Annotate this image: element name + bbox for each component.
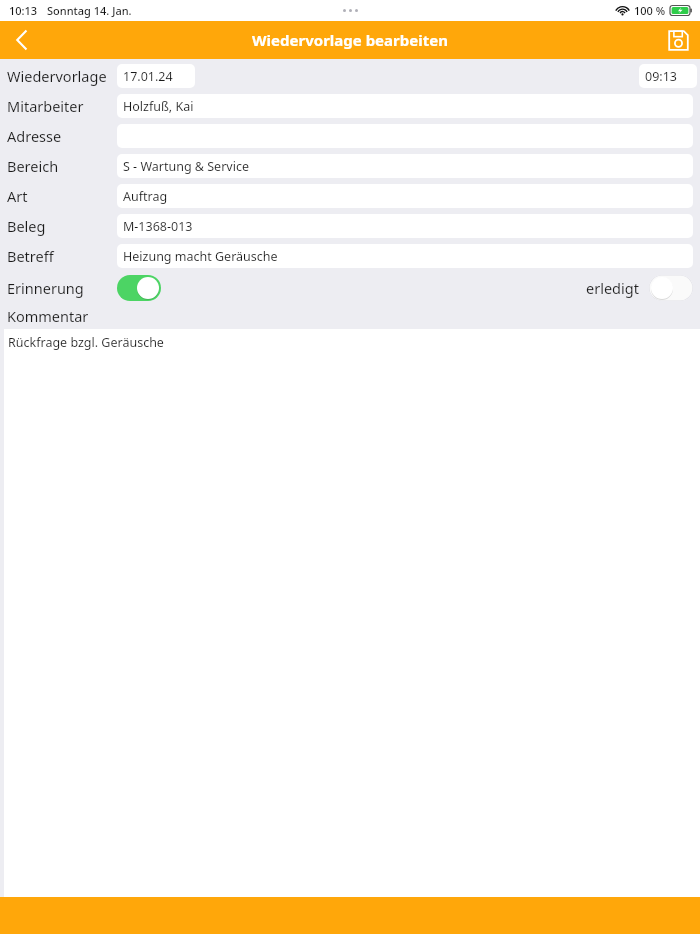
button[interactable]: 17.01.24 [117,64,195,88]
button[interactable]: Erinnerung aktiviert [117,275,161,301]
staticText: Betreff [7,246,117,266]
staticText: Beleg [7,216,117,236]
staticText: 100 % [634,3,666,18]
button[interactable]: Zurück [0,21,44,59]
button[interactable]: Rückfrage bzgl. Geräusche [4,329,700,897]
staticText: Mitarbeiter [7,96,117,116]
staticText: Wiedervorlage bearbeiten [252,30,448,50]
button[interactable]: 09:13 [639,64,697,88]
staticText: Art [7,186,117,206]
staticText: 09:13 [645,68,677,85]
staticText: S - Wartung & Service [123,158,249,175]
staticText: Adresse [7,126,117,146]
staticText: Sonntag 14. Jan. [47,3,132,18]
staticText: Erinnerung [7,278,117,298]
button[interactable]: M-1368-013 [117,214,693,238]
button[interactable]: Speichern [656,21,700,59]
staticText: M-1368-013 [123,218,193,235]
staticText: Wiedervorlage [7,66,117,86]
staticText: Kommentar [7,306,89,326]
staticText: 17.01.24 [123,68,173,85]
staticText: Rückfrage bzgl. Geräusche [8,334,164,351]
staticText: 10:13 [9,3,38,18]
staticText: erledigt [586,278,639,298]
staticText: Bereich [7,156,117,176]
button[interactable]: Heizung macht Geräusche [117,244,693,268]
button[interactable]: Holzfuß, Kai [117,94,693,118]
staticText: Auftrag [123,188,168,205]
staticText: Heizung macht Geräusche [123,248,278,265]
button[interactable]: erledigt [649,275,693,301]
staticText: Holzfuß, Kai [123,98,194,115]
button[interactable]: S - Wartung & Service [117,154,693,178]
button[interactable]: Auftrag [117,184,693,208]
